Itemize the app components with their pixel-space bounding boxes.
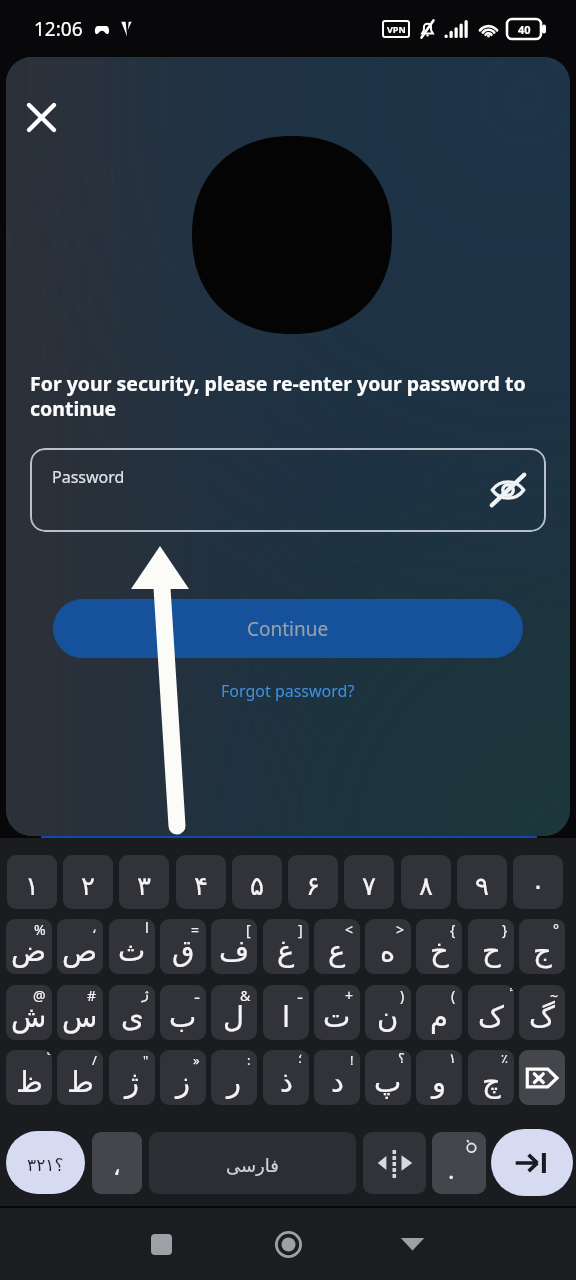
button[interactable]: ح — [468, 919, 514, 974]
staticText: ۳ — [137, 871, 151, 901]
button[interactable]: ؟۳۲۱ — [6, 1131, 85, 1194]
staticText: ف — [219, 934, 250, 968]
button[interactable]: ی — [109, 985, 155, 1040]
staticText: : — [247, 1051, 251, 1069]
staticText: ر — [227, 1065, 242, 1099]
staticText: 40 — [518, 22, 531, 37]
button[interactable]: ث — [109, 919, 155, 974]
button[interactable]: ژ — [109, 1050, 155, 1105]
button[interactable]: پ — [365, 1050, 411, 1105]
staticText: ا — [145, 920, 149, 936]
button[interactable]: Recents — [119, 1208, 203, 1280]
button[interactable]: ص — [57, 919, 103, 974]
button[interactable]: ا — [263, 985, 309, 1040]
staticText: ! — [350, 1051, 354, 1069]
button[interactable]: Home — [246, 1208, 330, 1280]
button[interactable]: و — [416, 1050, 462, 1105]
button[interactable]: ظ — [6, 1050, 52, 1105]
button[interactable]: ۷ — [344, 855, 394, 909]
button[interactable]: Password — [30, 448, 546, 532]
button[interactable]: Enter — [491, 1129, 573, 1196]
button[interactable]: گ — [519, 985, 565, 1040]
staticText: ح — [482, 934, 501, 968]
button[interactable]: ل — [211, 985, 257, 1040]
staticText: پ — [374, 1065, 402, 1099]
button[interactable]: ۲ — [63, 855, 113, 909]
button[interactable]: Close — [17, 93, 65, 141]
button[interactable]: س — [57, 985, 103, 1040]
staticText: ـ — [195, 986, 200, 1002]
staticText: چ — [482, 1065, 501, 1099]
button[interactable]: خ — [416, 919, 462, 974]
button[interactable]: ۵ — [232, 855, 282, 909]
button[interactable]: ۳ — [119, 855, 169, 909]
button[interactable]: ۹ — [457, 855, 507, 909]
button[interactable]: م — [416, 985, 462, 1040]
staticText: " — [143, 1051, 149, 1069]
button[interactable]: Hide keyboard — [370, 1208, 454, 1280]
button[interactable]: ه — [365, 919, 411, 974]
button[interactable]: ب — [160, 985, 206, 1040]
staticText: ژ — [125, 1065, 140, 1099]
button[interactable]: ش — [6, 985, 52, 1040]
staticText: & — [240, 986, 251, 1005]
staticText: [ — [246, 920, 251, 939]
staticText: ی — [121, 1000, 144, 1034]
staticText: ط — [67, 1065, 94, 1099]
button[interactable]: ز — [160, 1050, 206, 1105]
button[interactable]: ع — [314, 919, 360, 974]
button[interactable]: ک — [468, 985, 514, 1040]
staticText: For your security, please re-enter your … — [30, 370, 546, 422]
staticText: ، — [113, 1153, 121, 1181]
staticText: ص — [62, 934, 98, 968]
staticText: } — [502, 920, 508, 939]
staticText: VPN — [387, 23, 406, 35]
staticText: ۵ — [250, 871, 264, 901]
staticText: ک — [478, 1000, 504, 1034]
button[interactable]: Forgot password? — [215, 674, 361, 708]
staticText: ١ — [449, 1051, 456, 1066]
staticText: ؟ — [398, 1051, 405, 1066]
staticText: و — [432, 1065, 447, 1099]
button[interactable]: ض — [6, 919, 52, 974]
button[interactable]: ۴ — [176, 855, 226, 909]
button[interactable]: . — [432, 1132, 486, 1194]
button[interactable]: ط — [57, 1050, 103, 1105]
button[interactable]: ۶ — [288, 855, 338, 909]
button[interactable]: Cursor control — [363, 1132, 426, 1194]
staticText: فارسی — [226, 1155, 279, 1176]
button[interactable]: ۸ — [401, 855, 451, 909]
button[interactable]: ق — [160, 919, 206, 974]
staticText: / — [92, 1051, 97, 1069]
button[interactable]: غ — [263, 919, 309, 974]
button[interactable]: فارسی — [149, 1132, 356, 1194]
button[interactable]: ۱ — [7, 855, 57, 909]
staticText: ا — [282, 1000, 291, 1034]
button[interactable]: ۰ — [513, 855, 563, 909]
button[interactable]: Continue — [53, 599, 523, 658]
staticText: ٪ — [501, 1051, 508, 1066]
button[interactable]: ، — [92, 1132, 142, 1194]
button[interactable]: ج — [519, 919, 565, 974]
button[interactable]: د — [314, 1050, 360, 1105]
button[interactable]: Backspace — [519, 1050, 565, 1105]
staticText: ( — [451, 986, 456, 1005]
staticText: { — [450, 920, 456, 939]
staticText: ع — [328, 934, 346, 968]
button[interactable]: ر — [211, 1050, 257, 1105]
staticText: . — [448, 1153, 455, 1186]
staticText: Forgot password? — [221, 680, 355, 702]
staticText: ۶ — [306, 871, 320, 901]
staticText: غ — [277, 934, 295, 968]
staticText: » — [193, 1051, 200, 1069]
staticText: ض — [11, 934, 47, 968]
staticText: ز — [176, 1065, 191, 1099]
button[interactable]: چ — [468, 1050, 514, 1105]
staticText: ۸ — [419, 871, 433, 901]
button[interactable]: Show password — [484, 466, 532, 514]
button[interactable]: ذ — [263, 1050, 309, 1105]
button[interactable]: ف — [211, 919, 257, 974]
staticText: = — [191, 920, 200, 939]
button[interactable]: ت — [314, 985, 360, 1040]
button[interactable]: ن — [365, 985, 411, 1040]
